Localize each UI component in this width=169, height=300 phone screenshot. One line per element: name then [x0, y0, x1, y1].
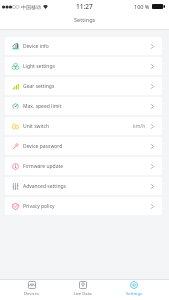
button[interactable]: Firmware update: [5, 157, 162, 175]
staticText: Device info: [23, 43, 49, 50]
staticText: 中国移动: [21, 4, 41, 10]
button[interactable]: Settings: [108, 280, 159, 297]
staticText: Settings: [126, 291, 142, 297]
staticText: Devices: [24, 291, 39, 297]
staticText: Advanced settings: [23, 183, 66, 190]
button[interactable]: Device info: [5, 37, 162, 55]
staticText: Light settings: [23, 63, 55, 70]
button[interactable]: Device password: [5, 137, 162, 155]
button[interactable]: Gear settings: [5, 77, 162, 95]
staticText: Settings: [74, 16, 96, 24]
staticText: 100 %: [134, 3, 150, 10]
staticText: 11:27: [76, 2, 93, 11]
button[interactable]: Privacy policy: [5, 197, 162, 215]
button[interactable]: Live Data: [57, 280, 108, 297]
staticText: Privacy policy: [23, 203, 55, 210]
staticText: km/h: [133, 123, 146, 130]
button[interactable]: Max. speed limit: [5, 97, 162, 115]
button[interactable]: Devices: [6, 280, 57, 297]
staticText: Firmware update: [23, 163, 64, 170]
button[interactable]: Unit switch: [5, 117, 162, 135]
button[interactable]: Advanced settings: [5, 177, 162, 195]
staticText: Gear settings: [23, 83, 55, 90]
staticText: Max. speed limit: [23, 103, 62, 110]
staticText: Unit switch: [23, 123, 50, 130]
staticText: Live Data: [73, 291, 92, 297]
staticText: Device password: [23, 143, 63, 150]
button[interactable]: Light settings: [5, 57, 162, 75]
